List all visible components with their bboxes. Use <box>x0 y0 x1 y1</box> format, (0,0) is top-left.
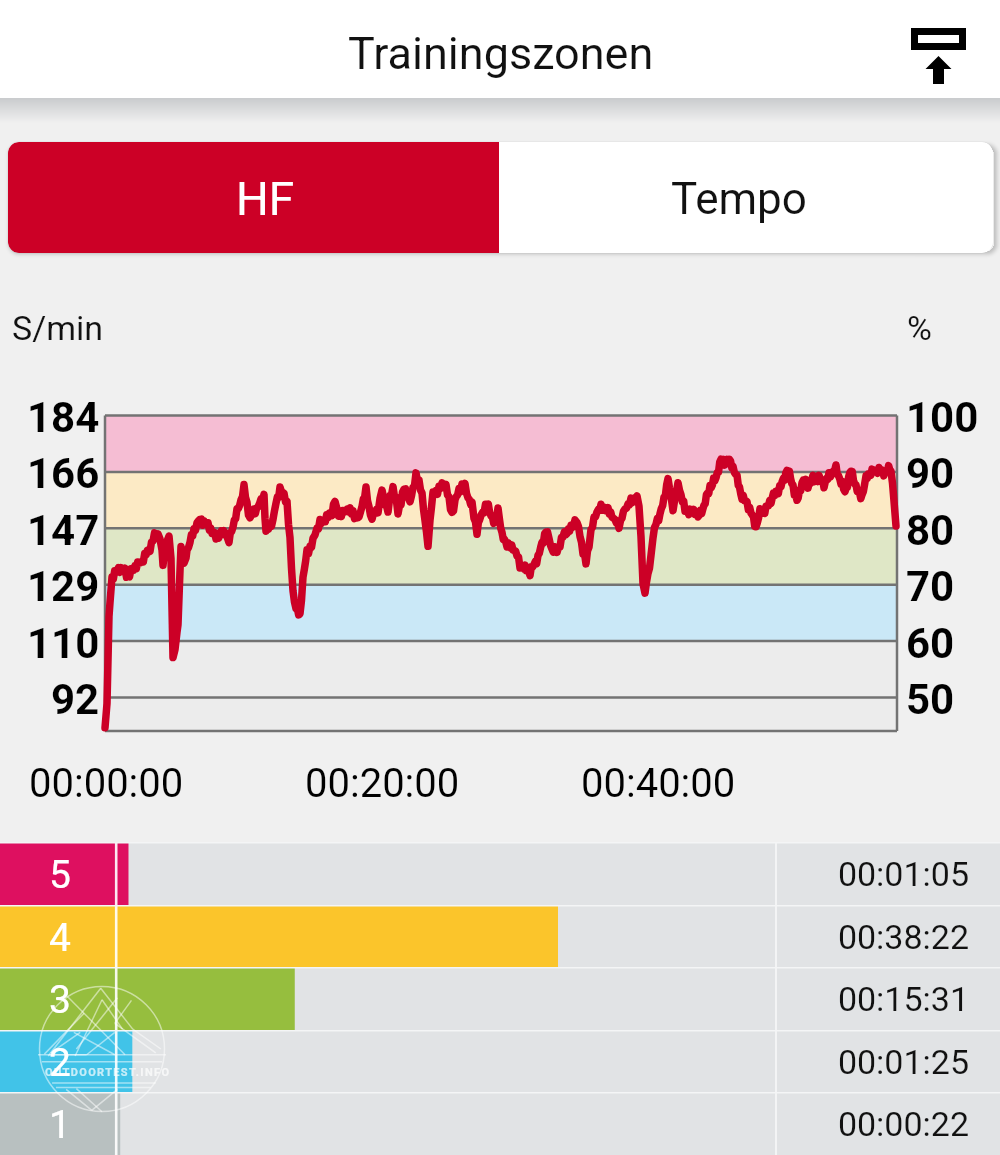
staticText: 90 <box>906 449 955 498</box>
staticText: 110 <box>27 619 100 668</box>
staticText: Tempo <box>671 173 807 225</box>
staticText: 129 <box>27 562 100 611</box>
staticText: Trainingszonen <box>348 27 654 80</box>
button[interactable]: 4 <box>0 905 1000 968</box>
staticText: 00:38:22 <box>779 917 969 957</box>
staticText: 2 <box>49 1040 71 1086</box>
button[interactable]: 1 <box>0 1092 1000 1155</box>
staticText: OUTDOORTEST.INFO <box>45 1066 171 1079</box>
staticText: 5 <box>49 852 71 898</box>
staticText: 00:15:31 <box>779 979 969 1019</box>
staticText: 4 <box>49 915 71 961</box>
staticText: 184 <box>27 393 100 442</box>
staticText: 100 <box>906 393 979 442</box>
staticText: 00:00:00 <box>29 760 184 807</box>
button[interactable]: Tempo <box>499 142 993 253</box>
staticText: 00:00:22 <box>779 1104 969 1144</box>
staticText: 92 <box>51 675 100 724</box>
staticText: 147 <box>27 506 100 555</box>
staticText: % <box>907 308 932 348</box>
button[interactable]: 2 <box>0 1030 1000 1093</box>
button[interactable]: HF <box>8 142 499 253</box>
staticText: 166 <box>27 449 100 498</box>
staticText: 00:40:00 <box>581 760 736 807</box>
staticText: 60 <box>906 619 955 668</box>
button[interactable]: 5 <box>0 842 1000 905</box>
staticText: HF <box>236 172 295 226</box>
staticText: 00:01:05 <box>779 854 969 894</box>
staticText: 00:20:00 <box>305 760 460 807</box>
staticText: 00:01:25 <box>779 1042 969 1082</box>
button[interactable]: Export <box>903 14 975 86</box>
staticText: S/min <box>12 308 104 348</box>
staticText: 70 <box>906 562 955 611</box>
staticText: 1 <box>49 1102 71 1148</box>
button[interactable]: 3 <box>0 967 1000 1030</box>
staticText: 50 <box>906 675 955 724</box>
staticText: 80 <box>906 506 955 555</box>
staticText: 3 <box>49 977 71 1023</box>
